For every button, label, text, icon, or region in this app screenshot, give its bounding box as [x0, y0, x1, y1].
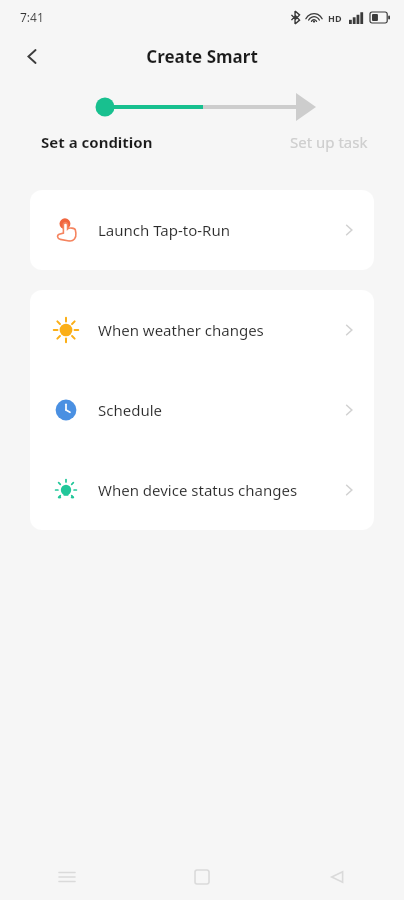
button[interactable]: When weather changes: [30, 290, 374, 370]
staticText: Schedule: [98, 400, 342, 420]
button[interactable]: Schedule: [30, 370, 374, 450]
button[interactable]: When device status changes: [30, 450, 374, 530]
staticText: Set up task: [290, 132, 368, 152]
staticText: Create Smart: [146, 45, 258, 68]
staticText: When weather changes: [98, 320, 342, 340]
button[interactable]: Launch Tap-to-Run: [30, 190, 374, 270]
staticText: When device status changes: [98, 480, 342, 500]
button[interactable]: Back: [10, 34, 54, 78]
staticText: Set a condition: [41, 132, 153, 152]
staticText: Launch Tap-to-Run: [98, 220, 342, 240]
staticText: HD: [328, 12, 342, 24]
staticText: 7:41: [20, 9, 44, 25]
